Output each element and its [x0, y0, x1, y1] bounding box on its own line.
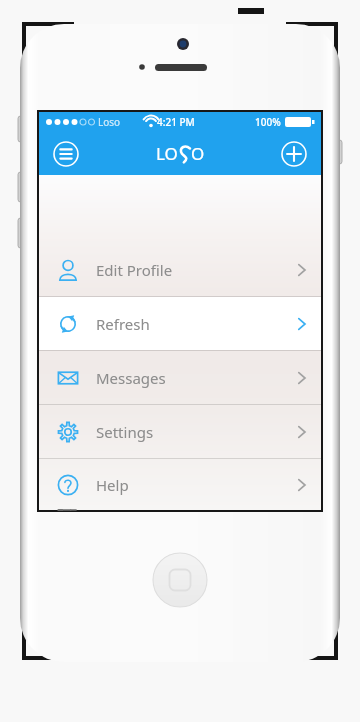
staticText: Edit Profile: [96, 260, 173, 280]
staticText: Loso: [98, 115, 121, 129]
button[interactable]: Settings: [39, 405, 321, 458]
staticText: Help: [96, 475, 129, 495]
staticText: LO: [156, 142, 178, 165]
staticText: Refresh: [96, 314, 150, 334]
staticText: 4:21 PM: [157, 115, 195, 129]
button[interactable]: Help: [39, 459, 321, 510]
staticText: O: [191, 142, 205, 165]
button[interactable]: Refresh: [39, 297, 321, 350]
staticText: Settings: [96, 422, 154, 442]
button[interactable]: Messages: [39, 351, 321, 404]
button[interactable]: Add: [277, 137, 311, 171]
button[interactable]: Edit Profile: [39, 243, 321, 296]
button[interactable]: Menu: [49, 137, 83, 171]
staticText: 100%: [255, 115, 281, 129]
staticText: Messages: [96, 368, 166, 388]
